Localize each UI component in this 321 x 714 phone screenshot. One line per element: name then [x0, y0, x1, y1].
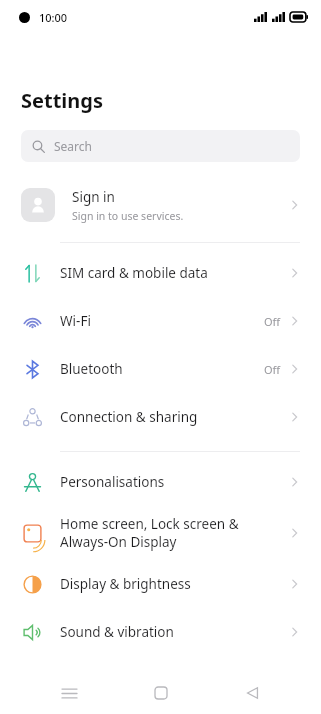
button[interactable]: Sign in: [0, 176, 321, 234]
button[interactable]: Recent apps: [46, 672, 92, 714]
staticText: Bluetooth: [60, 360, 264, 378]
button[interactable]: Home screen, Lock screen & Always-On Dis…: [0, 506, 321, 560]
staticText: Off: [264, 314, 281, 329]
button[interactable]: Connection & sharing: [0, 393, 321, 441]
staticText: 10:00: [39, 10, 68, 25]
button[interactable]: SIM card & mobile data: [0, 249, 321, 297]
button[interactable]: Sound & vibration: [0, 608, 321, 656]
staticText: Personalisations: [60, 473, 290, 491]
staticText: SIM card & mobile data: [60, 264, 290, 282]
staticText: Display & brightness: [60, 575, 290, 593]
staticText: Sign in to use services.: [72, 209, 184, 223]
staticText: Off: [264, 362, 281, 377]
button[interactable]: Search: [21, 130, 300, 162]
staticText: Search: [54, 138, 92, 154]
button[interactable]: Bluetooth: [0, 345, 321, 393]
button[interactable]: Back: [229, 672, 275, 714]
button[interactable]: Personalisations: [0, 458, 321, 506]
staticText: Sign in: [72, 188, 115, 206]
button[interactable]: Wi-Fi: [0, 297, 321, 345]
button[interactable]: Display & brightness: [0, 560, 321, 608]
staticText: Sound & vibration: [60, 623, 290, 641]
staticText: Connection & sharing: [60, 408, 290, 426]
staticText: Settings: [21, 87, 103, 114]
button[interactable]: Home: [138, 672, 184, 714]
staticText: Wi-Fi: [60, 312, 264, 330]
staticText: Home screen, Lock screen & Always-On Dis…: [60, 515, 290, 551]
